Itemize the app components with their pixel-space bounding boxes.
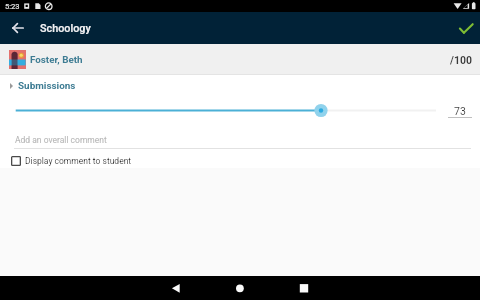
staticText: Submissions	[18, 80, 76, 92]
button[interactable]: Foster, Beth	[0, 44, 480, 75]
button[interactable]: 73	[448, 105, 472, 118]
button[interactable]: Submissions	[0, 77, 480, 95]
button[interactable]: Save grade	[452, 15, 478, 41]
button[interactable]: Add an overall comment	[0, 135, 480, 149]
button[interactable]: Back	[156, 276, 196, 300]
staticText: 5:23	[5, 2, 20, 11]
staticText: Add an overall comment	[15, 135, 107, 145]
button[interactable]: Navigate up	[6, 16, 30, 40]
staticText: Schoology	[40, 22, 91, 35]
staticText: 73	[454, 105, 466, 117]
button[interactable]: Recent apps	[284, 276, 324, 300]
staticText: Foster, Beth	[30, 54, 83, 65]
staticText: Display comment to student	[25, 156, 132, 166]
button[interactable]: Home	[220, 276, 260, 300]
button[interactable]: Display comment to student	[0, 154, 480, 168]
staticText: /100	[450, 54, 472, 66]
